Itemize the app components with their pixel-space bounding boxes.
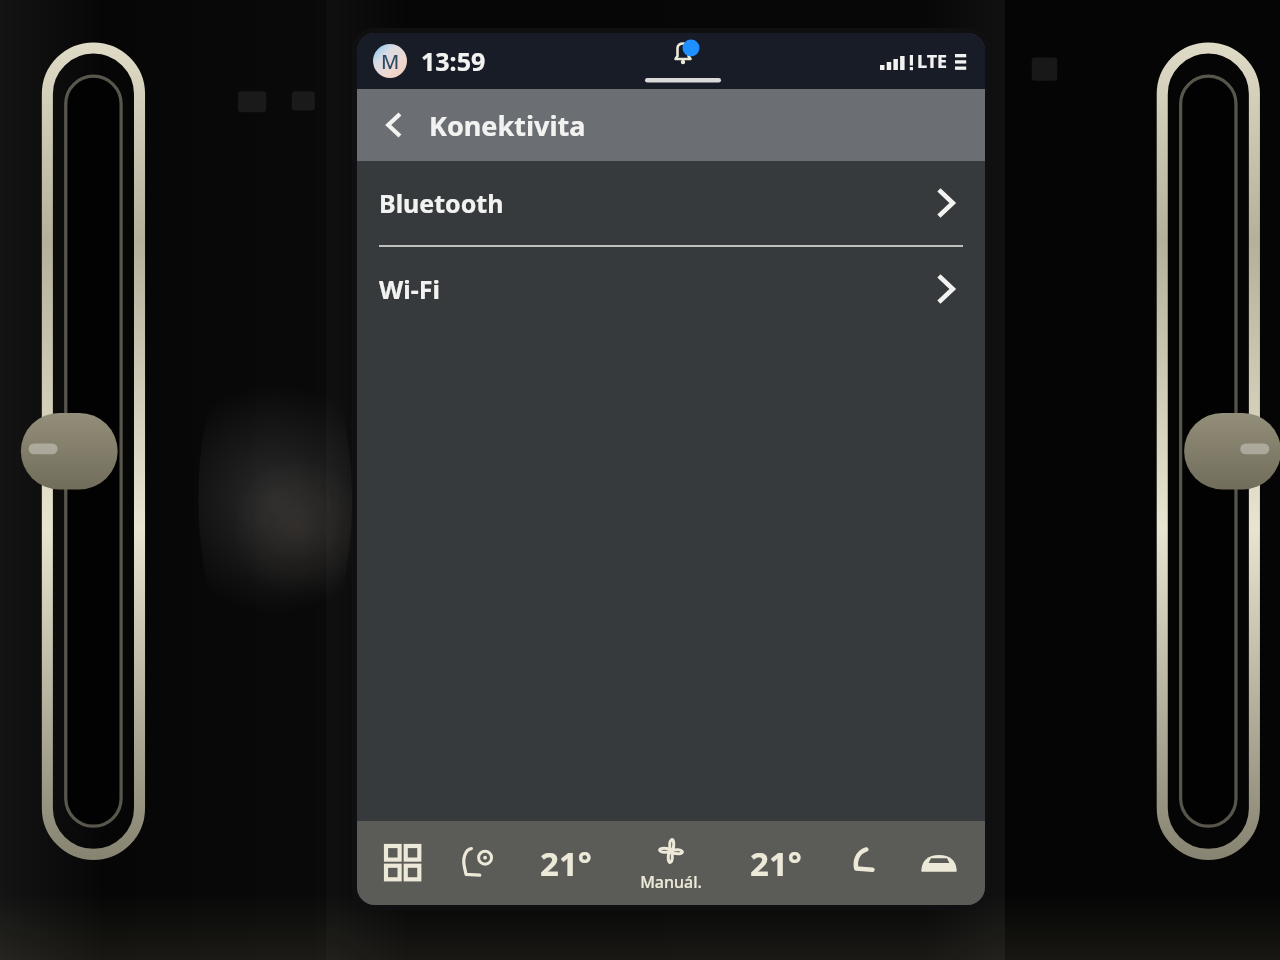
button[interactable]: Driver temperature 21 degrees	[523, 831, 609, 895]
staticText: Manuál.	[640, 871, 702, 893]
staticText: M	[381, 48, 400, 75]
staticText: Bluetooth	[379, 186, 504, 220]
button[interactable]: Passenger seat climate	[831, 831, 895, 895]
staticText: 13:59	[421, 44, 486, 78]
button[interactable]: Notifications	[638, 33, 728, 89]
staticText: 21°	[540, 841, 592, 886]
button[interactable]: Passenger temperature 21 degrees	[733, 831, 819, 895]
staticText: LTE	[917, 49, 948, 74]
staticText: Wi-Fi	[379, 272, 440, 306]
button[interactable]: Back	[357, 89, 429, 161]
button[interactable]: Wi-Fi	[357, 247, 985, 331]
button[interactable]: Profile	[373, 44, 407, 78]
button[interactable]: Apps	[371, 831, 435, 895]
button[interactable]: Climate, manual	[621, 824, 721, 902]
staticText: Konektivita	[429, 107, 586, 144]
button[interactable]: Driver seat climate	[447, 831, 511, 895]
button[interactable]: Bluetooth	[357, 161, 985, 245]
button[interactable]: Defroster	[907, 831, 971, 895]
staticText: 21°	[750, 841, 802, 886]
